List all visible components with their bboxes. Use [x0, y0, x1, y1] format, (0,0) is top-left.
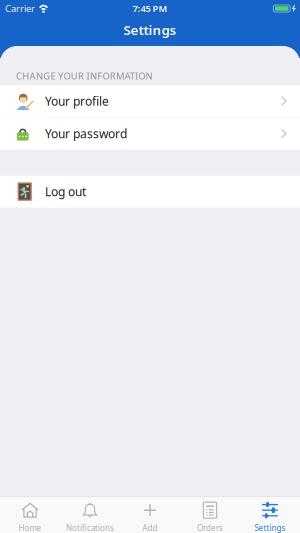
button[interactable]: Settings: [240, 497, 300, 533]
button[interactable]: Home: [0, 497, 60, 533]
staticText: Settings: [254, 523, 285, 533]
button[interactable]: Orders: [180, 497, 240, 533]
staticText: Orders: [197, 523, 223, 533]
staticText: Log out: [45, 184, 86, 199]
staticText: Home: [18, 523, 41, 533]
staticText: Carrier: [5, 2, 35, 15]
staticText: 7:45 PM: [132, 2, 167, 15]
staticText: Add: [142, 523, 157, 533]
staticText: Notifications: [66, 523, 114, 533]
button[interactable]: Log out: [0, 176, 300, 208]
button[interactable]: Your password: [0, 118, 300, 150]
staticText: Your profile: [45, 93, 109, 109]
staticText: CHANGE YOUR INFORMATION: [16, 70, 153, 82]
staticText: Settings: [123, 21, 176, 39]
button[interactable]: Your profile: [0, 85, 300, 117]
button[interactable]: Notifications: [60, 497, 120, 533]
button[interactable]: Add: [120, 497, 180, 533]
staticText: Your password: [45, 126, 127, 141]
